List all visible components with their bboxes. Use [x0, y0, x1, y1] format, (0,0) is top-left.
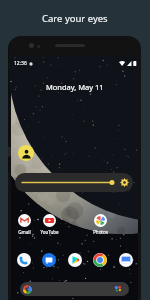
button[interactable]: Calendar: [113, 251, 138, 268]
staticText: Photos: [93, 229, 108, 235]
button[interactable]: Brightness: [15, 173, 133, 192]
button[interactable]: Search: [20, 282, 129, 296]
button[interactable]: Photos: [88, 214, 112, 235]
button[interactable]: Gmail: [12, 214, 36, 235]
button[interactable]: Eye care: [18, 145, 34, 161]
button[interactable]: Messages: [36, 251, 61, 268]
staticText: Gmail: [18, 229, 31, 235]
staticText: Care your eyes: [42, 12, 108, 25]
button[interactable]: YouTube: [37, 214, 61, 235]
button[interactable]: Phone: [11, 251, 36, 268]
staticText: YouTube: [40, 229, 59, 235]
staticText: Monday, May 11: [46, 82, 104, 92]
button[interactable]: Play Store: [62, 251, 87, 268]
staticText: 12:36: [14, 60, 27, 67]
button[interactable]: Chrome: [87, 251, 112, 268]
